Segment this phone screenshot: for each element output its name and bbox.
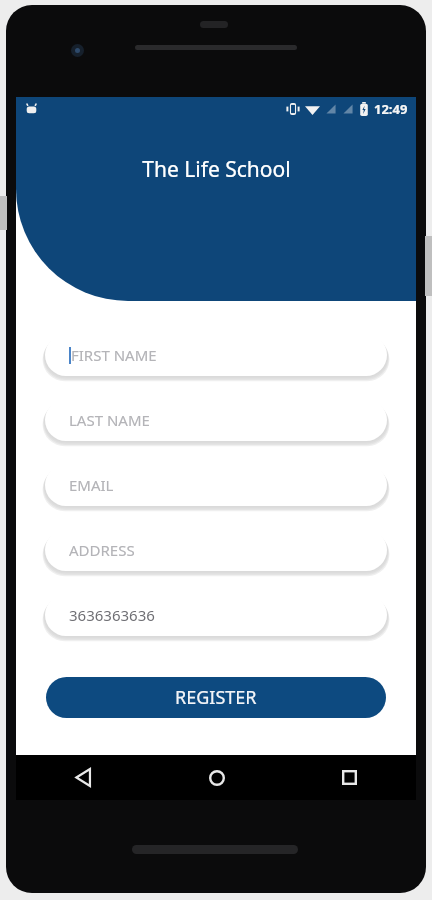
staticText: FIRST NAME bbox=[71, 345, 157, 365]
staticText: REGISTER bbox=[175, 685, 257, 710]
staticText: LAST NAME bbox=[69, 410, 150, 430]
staticText: 3636363636 bbox=[69, 605, 155, 625]
button[interactable]: 3636363636 bbox=[45, 594, 387, 636]
staticText: The Life School bbox=[142, 155, 291, 184]
button[interactable]: EMAIL bbox=[45, 464, 387, 506]
button[interactable]: ADDRESS bbox=[45, 529, 387, 571]
button[interactable]: Back bbox=[16, 755, 150, 800]
button[interactable]: FIRST NAME bbox=[45, 334, 387, 376]
staticText: 12:49 bbox=[374, 100, 408, 118]
button[interactable]: REGISTER bbox=[46, 677, 386, 718]
button[interactable]: LAST NAME bbox=[45, 399, 387, 441]
button[interactable]: Home bbox=[150, 755, 283, 800]
staticText: EMAIL bbox=[69, 475, 114, 495]
staticText: ADDRESS bbox=[69, 540, 135, 560]
button[interactable]: Recent apps bbox=[283, 755, 416, 800]
